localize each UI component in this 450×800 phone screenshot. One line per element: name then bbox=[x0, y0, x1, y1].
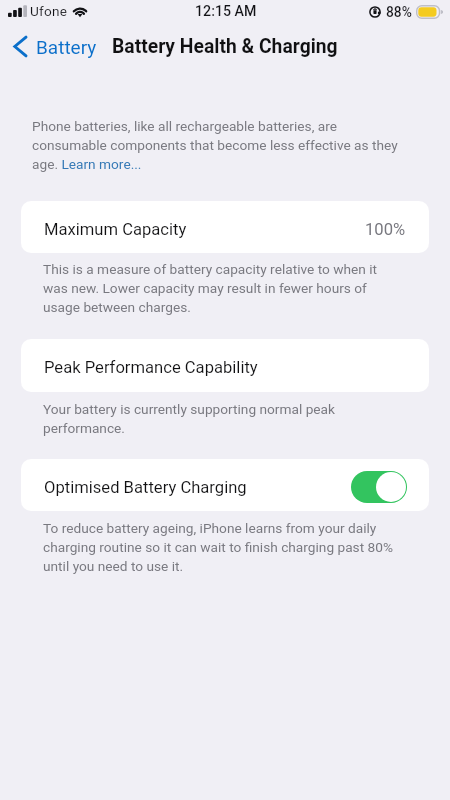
button[interactable]: Peak Performance Capability bbox=[21, 339, 429, 392]
staticText: To reduce battery ageing, iPhone learns … bbox=[43, 520, 399, 574]
staticText: Ufone bbox=[30, 3, 68, 19]
staticText: Maximum Capacity bbox=[44, 220, 187, 239]
staticText: Phone batteries, like all rechargeable b… bbox=[32, 118, 406, 172]
other: Rotation lock bbox=[369, 6, 381, 18]
staticText: 88% bbox=[386, 4, 412, 20]
button[interactable]: Maximum Capacity bbox=[21, 201, 429, 253]
button[interactable]: Optimised Battery Charging bbox=[21, 459, 429, 511]
staticText: Your battery is currently supporting nor… bbox=[43, 401, 399, 436]
staticText: Battery Health & Charging bbox=[112, 35, 338, 58]
button[interactable]: Optimised Battery Charging toggle bbox=[351, 471, 407, 503]
button[interactable]: Back bbox=[13, 35, 97, 58]
staticText: 100% bbox=[365, 220, 406, 239]
staticText: Peak Performance Capability bbox=[44, 358, 258, 377]
staticText: Optimised Battery Charging bbox=[44, 478, 247, 497]
other: Battery 88 percent bbox=[416, 5, 443, 19]
staticText: 12:15 AM bbox=[195, 3, 257, 20]
staticText: Battery bbox=[36, 36, 97, 58]
staticText: This is a measure of battery capacity re… bbox=[43, 261, 399, 315]
other: Cellular signal bbox=[8, 5, 27, 17]
other: Back bbox=[13, 35, 27, 58]
